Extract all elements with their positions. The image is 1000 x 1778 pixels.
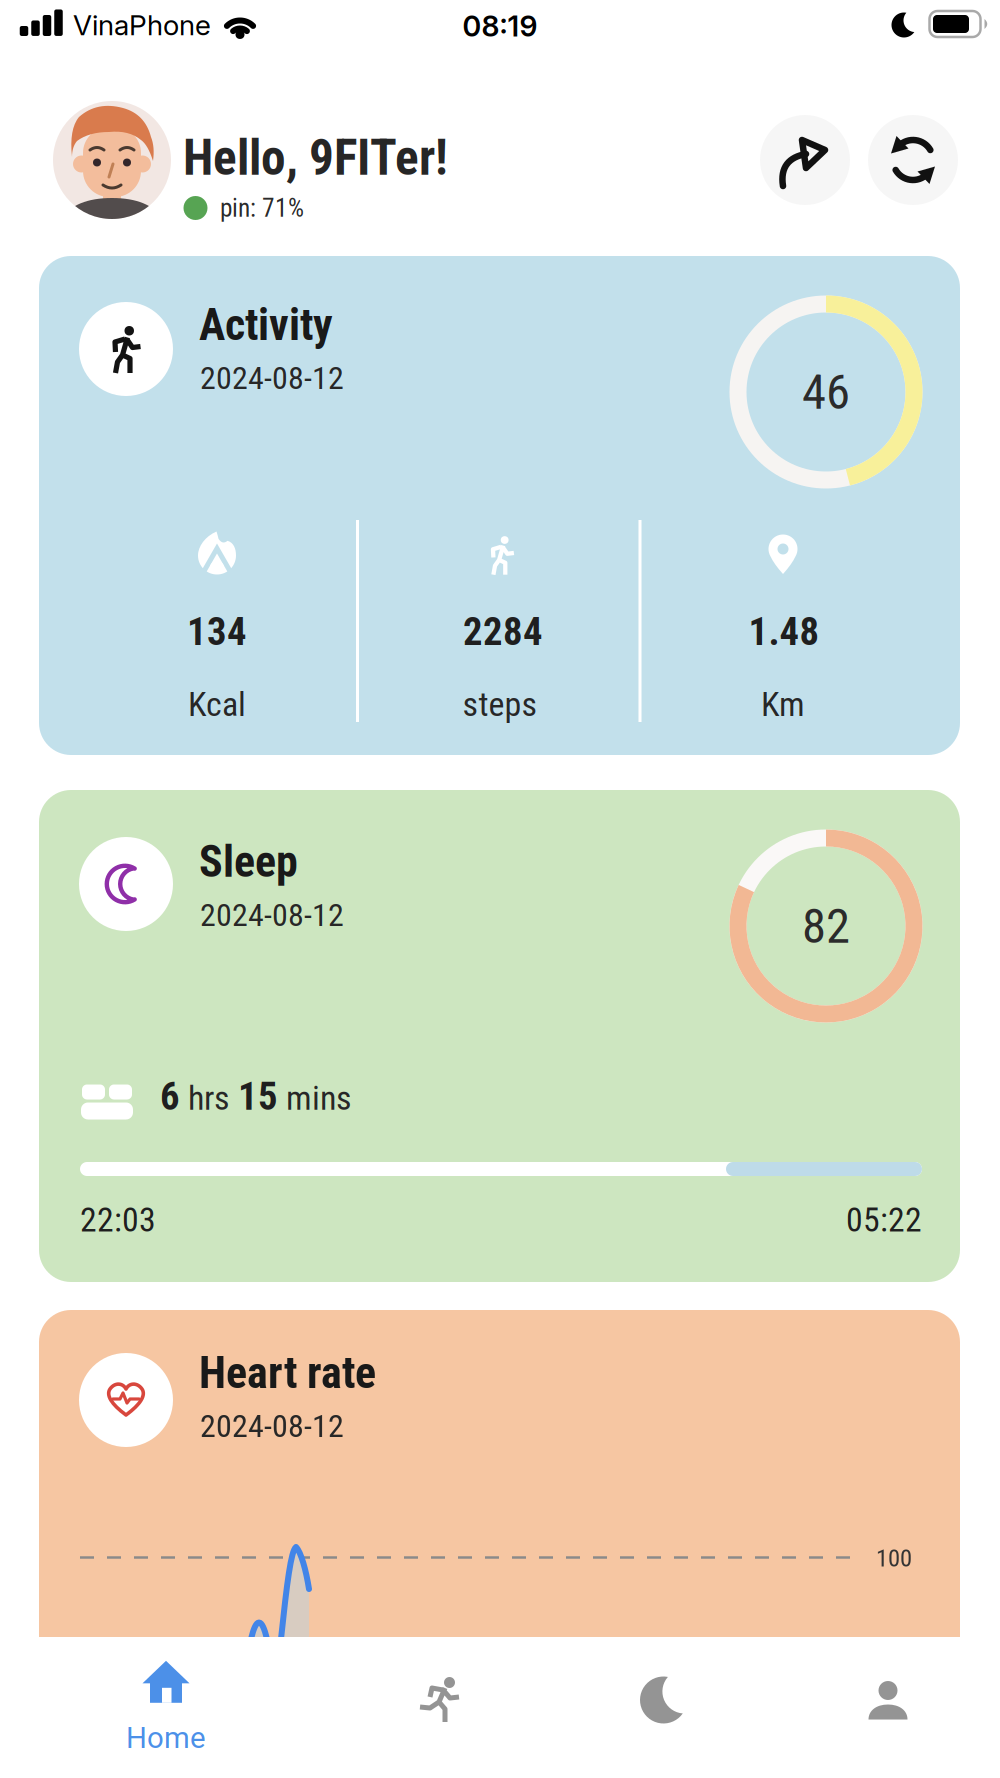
staticText: 46 [802,363,850,420]
staticText: Home [126,1721,206,1755]
button[interactable]: Sleep [619,1655,709,1745]
staticText: 05:22 [846,1200,922,1240]
staticText: Hello, 9FITer! [183,129,448,187]
button[interactable]: Heart rate [39,1310,960,1680]
staticText: steps [462,684,537,724]
staticText: Activity [199,299,333,351]
staticText: 2284 [463,609,543,654]
button[interactable]: Profile [843,1655,933,1745]
button[interactable]: Sleep [39,790,960,1282]
staticText: 1.48 [748,609,819,654]
staticText: 100 [876,1544,912,1572]
staticText: 22:03 [80,1200,156,1240]
staticText: VinaPhone [73,8,211,42]
staticText: 134 [187,609,247,654]
staticText: 2024-08-12 [200,1407,344,1445]
staticText: hrs [188,1078,230,1118]
staticText: Sleep [199,836,298,887]
staticText: pin: 71% [220,193,304,223]
button[interactable]: Share [760,115,850,205]
staticText: 15 [238,1074,278,1119]
staticText: 2024-08-12 [200,359,344,397]
button[interactable]: Sync [868,115,958,205]
staticText: 82 [802,897,850,954]
staticText: 08:19 [462,9,537,43]
staticText: 2024-08-12 [200,896,344,934]
staticText: Kcal [188,684,246,724]
staticText: 6 [160,1074,180,1119]
button[interactable]: Home [126,1661,206,1755]
staticText: mins [286,1078,352,1118]
button[interactable]: Activity [395,1655,485,1745]
staticText: Km [761,684,805,724]
button[interactable]: Activity [39,256,960,755]
staticText: Heart rate [199,1347,376,1399]
